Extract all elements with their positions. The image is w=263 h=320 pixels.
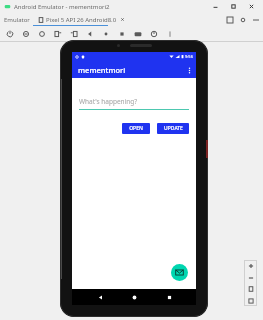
- button[interactable]: UPDATE: [157, 123, 189, 134]
- staticText: 9:56: [185, 54, 193, 59]
- button[interactable]: Actual size: [245, 295, 256, 306]
- button[interactable]: Volume up: [20, 28, 31, 39]
- button[interactable]: Home: [100, 28, 111, 39]
- button[interactable]: Back: [84, 28, 95, 39]
- button[interactable]: Overview: [116, 28, 127, 39]
- button[interactable]: Zoom out: [245, 272, 256, 283]
- button[interactable]: Settings: [240, 17, 246, 23]
- button[interactable]: Compose message: [171, 264, 188, 281]
- button[interactable]: What's happening?: [79, 97, 189, 110]
- button[interactable]: close: [242, 0, 260, 13]
- button[interactable]: minimize: [206, 0, 224, 13]
- button[interactable]: Recent apps: [162, 290, 176, 304]
- staticText: Android Emulator - mementmori2: [14, 3, 110, 11]
- staticText: mementmori: [78, 65, 126, 75]
- button[interactable]: Minimize panel: [253, 17, 259, 23]
- staticText: Pixel 5 API 26 Android8.0: [46, 16, 117, 24]
- staticText: OPEN: [129, 125, 143, 132]
- staticText: What's happening?: [79, 97, 138, 106]
- button[interactable]: Rotate left: [52, 28, 63, 39]
- button[interactable]: OPEN: [122, 123, 150, 134]
- button[interactable]: Zoom in: [245, 260, 256, 271]
- button[interactable]: More options: [182, 63, 196, 77]
- other: Close tab: [120, 17, 125, 22]
- button[interactable]: Screenshot: [132, 28, 143, 39]
- button[interactable]: maximize: [224, 0, 242, 13]
- button[interactable]: Rotate right: [68, 28, 79, 39]
- staticText: UPDATE: [164, 125, 183, 132]
- button[interactable]: Home: [127, 290, 141, 304]
- button[interactable]: Fit height: [245, 283, 256, 294]
- button[interactable]: History: [148, 28, 159, 39]
- staticText: Emulator: [4, 16, 30, 24]
- button[interactable]: More: [164, 28, 175, 39]
- button[interactable]: Volume down: [36, 28, 47, 39]
- button[interactable]: Snapshot: [227, 17, 233, 23]
- button[interactable]: Pixel 5 API 26 Android8.0: [38, 13, 125, 26]
- button[interactable]: Power: [4, 28, 15, 39]
- button[interactable]: Back: [93, 290, 107, 304]
